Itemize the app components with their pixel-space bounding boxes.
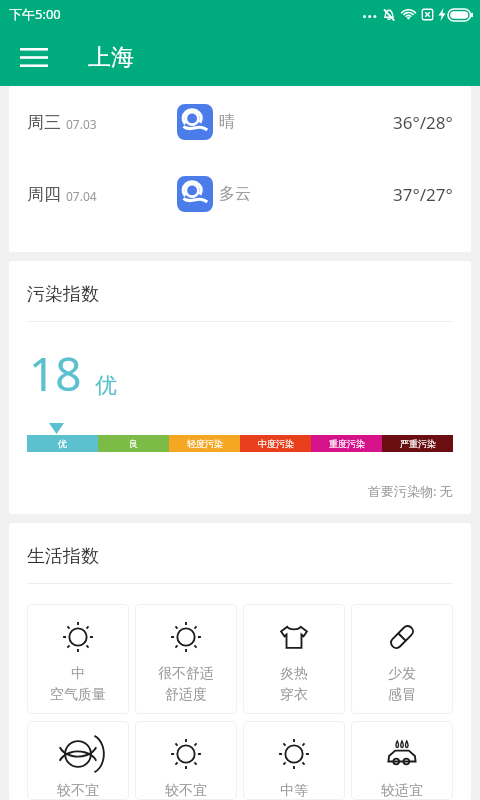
staticText: 舒适度 [165, 686, 207, 704]
staticText: 优 [58, 438, 67, 449]
button[interactable]: 中 [27, 604, 129, 714]
staticText: 周三 [27, 112, 61, 133]
staticText: 晴 [219, 112, 235, 132]
staticText: 中等 [280, 782, 308, 800]
button[interactable]: 周三 [9, 86, 471, 158]
staticText: 上海 [88, 43, 134, 72]
staticText: 感冒 [388, 686, 416, 704]
button[interactable]: 炎热 [243, 604, 345, 714]
button[interactable]: Menu [12, 35, 56, 79]
button[interactable]: 中等 [243, 721, 345, 800]
staticText: 轻度污染 [187, 438, 223, 449]
staticText: 严重污染 [400, 438, 436, 449]
staticText: 较不宜 [57, 782, 99, 800]
button[interactable]: 周四 [9, 158, 471, 230]
staticText: 较适宜 [381, 782, 423, 800]
staticText: 重度污染 [329, 438, 365, 449]
staticText: 穿衣 [280, 686, 308, 704]
staticText: 18 [29, 342, 82, 405]
staticText: 37°/27° [393, 183, 453, 206]
button[interactable]: 较不宜 [27, 721, 129, 800]
staticText: 生活指数 [27, 545, 99, 568]
button[interactable]: 较不宜 [135, 721, 237, 800]
staticText: 36°/28° [393, 111, 453, 134]
staticText: 较不宜 [165, 782, 207, 800]
staticText: 少发 [388, 665, 416, 683]
staticText: 污染指数 [27, 283, 99, 306]
staticText: 良 [129, 438, 138, 449]
staticText: 空气质量 [50, 686, 106, 704]
staticText: 首要污染物: 无 [368, 482, 453, 500]
staticText: 很不舒适 [158, 665, 214, 683]
staticText: 中 [71, 665, 85, 683]
staticText: 炎热 [280, 665, 308, 683]
staticText: 周四 [27, 184, 61, 205]
staticText: 优 [95, 372, 117, 400]
staticText: 多云 [219, 184, 251, 204]
button[interactable]: 很不舒适 [135, 604, 237, 714]
staticText: 下午5:00 [9, 5, 61, 23]
staticText: 07.04 [66, 188, 97, 204]
staticText: 07.03 [66, 116, 97, 132]
staticText: 中度污染 [258, 438, 294, 449]
button[interactable]: 较适宜 [351, 721, 453, 800]
button[interactable]: 少发 [351, 604, 453, 714]
